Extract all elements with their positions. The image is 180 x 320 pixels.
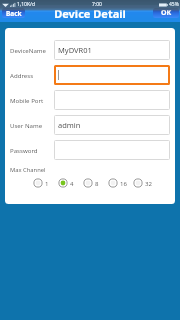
staticText: 16 — [120, 179, 127, 187]
staticText: 1 — [45, 179, 49, 187]
staticText: 1,10K/d — [17, 1, 35, 8]
staticText: OK — [161, 8, 172, 18]
button[interactable] — [54, 90, 170, 110]
staticText: Password — [10, 146, 38, 154]
staticText: admin — [58, 120, 81, 130]
staticText: Device Detail — [0, 6, 180, 21]
button[interactable]: admin — [54, 115, 170, 135]
staticText: MyDVR01 — [58, 45, 92, 55]
staticText: User Name — [10, 121, 43, 129]
staticText: 7:00 — [92, 1, 102, 8]
staticText: 8 — [95, 179, 99, 187]
button[interactable]: 32 — [133, 178, 158, 188]
staticText: DeviceName — [10, 46, 46, 54]
staticText: 45% — [169, 1, 179, 8]
button[interactable]: 1 — [33, 178, 58, 188]
staticText: Max Channel — [10, 166, 46, 174]
button[interactable]: 4 — [58, 178, 83, 188]
staticText: Address — [10, 71, 34, 79]
button[interactable]: 16 — [108, 178, 133, 188]
button[interactable] — [54, 140, 170, 160]
staticText: Mobile Port — [10, 96, 44, 104]
button[interactable]: Back — [2, 8, 25, 18]
staticText: Back — [6, 9, 22, 18]
button[interactable] — [54, 65, 170, 85]
button[interactable]: 8 — [83, 178, 108, 188]
button[interactable]: MyDVR01 — [54, 40, 170, 60]
button[interactable]: OK — [153, 8, 179, 18]
staticText: 32 — [145, 179, 152, 187]
staticText: 4 — [70, 179, 74, 187]
